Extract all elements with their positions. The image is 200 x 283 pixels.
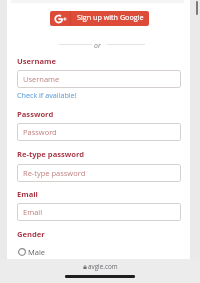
staticText: or bbox=[94, 41, 101, 51]
staticText: Username bbox=[23, 74, 60, 84]
staticText: avgle.com bbox=[88, 262, 118, 271]
staticText: Gender bbox=[17, 229, 45, 239]
button[interactable]: Password bbox=[17, 123, 181, 141]
button[interactable]: Re-type password bbox=[17, 164, 181, 182]
staticText: Email bbox=[23, 207, 43, 217]
staticText: Sign up with Google bbox=[77, 12, 144, 22]
staticText: Re-type password bbox=[23, 168, 86, 178]
staticText: Re-type password bbox=[17, 149, 85, 159]
other: Secure connection bbox=[83, 264, 87, 270]
button[interactable]: Secure connection bbox=[0, 259, 200, 274]
button[interactable]: Check if available! bbox=[17, 90, 77, 100]
staticText: Password bbox=[23, 127, 57, 137]
button[interactable]: Male bbox=[18, 247, 46, 257]
staticText: Password bbox=[17, 109, 54, 119]
staticText: Male bbox=[28, 247, 46, 257]
button[interactable]: Sign up with Google bbox=[50, 11, 149, 26]
staticText: Email bbox=[17, 189, 38, 199]
button[interactable]: Email bbox=[17, 203, 181, 221]
staticText: Username bbox=[17, 56, 56, 66]
button[interactable]: Username bbox=[17, 70, 181, 88]
